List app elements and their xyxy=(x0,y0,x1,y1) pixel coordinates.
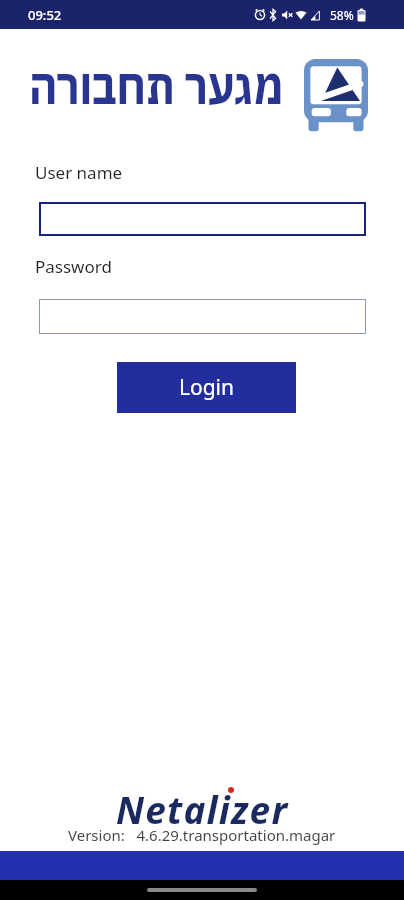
staticText: Netalizer xyxy=(116,784,289,834)
button[interactable] xyxy=(39,299,366,334)
staticText: 58% xyxy=(330,7,354,23)
staticText: Password xyxy=(35,255,112,278)
button[interactable] xyxy=(39,202,366,236)
staticText: User name xyxy=(35,161,123,184)
staticText: Version: 4.6.29.transportation.magar xyxy=(68,825,336,845)
staticText: מגער תחבורה xyxy=(29,54,284,118)
staticText: 09:52 xyxy=(28,6,62,24)
button[interactable]: Login xyxy=(117,362,296,413)
staticText: Login xyxy=(179,373,235,402)
